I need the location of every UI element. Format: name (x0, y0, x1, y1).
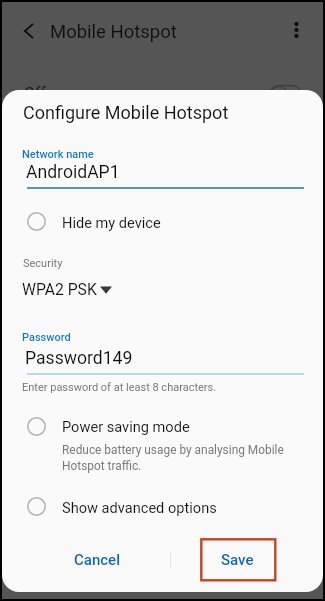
staticText: Off (24, 84, 47, 103)
staticText: Show advanced options (62, 499, 217, 516)
button[interactable]: Back (12, 12, 45, 49)
staticText: Enter password of at least 8 characters. (22, 381, 217, 394)
staticText: Security (23, 257, 63, 270)
button[interactable]: Power saving mode (2, 412, 323, 474)
staticText: Reduce battery usage by analysing Mobile… (62, 443, 286, 473)
button[interactable]: Cancel (57, 540, 137, 580)
staticText: WPA2 PSK (22, 280, 97, 298)
staticText: Configure Mobile Hotspot (23, 102, 229, 123)
button[interactable]: Hide my device (2, 205, 323, 237)
button[interactable]: WPA2 PSK (2, 275, 323, 297)
button[interactable]: Show advanced options (2, 490, 323, 522)
staticText: Network name (22, 148, 94, 161)
staticText: Hide my device (62, 214, 161, 231)
staticText: Power saving mode (62, 418, 190, 435)
staticText: Save (221, 551, 254, 569)
staticText: Password (22, 331, 71, 344)
button[interactable]: More options (282, 16, 310, 44)
staticText: Password149 (25, 348, 133, 369)
staticText: Cancel (74, 551, 121, 569)
staticText: AndroidAP1 (26, 162, 120, 183)
staticText: Mobile Hotspot (50, 21, 177, 43)
button[interactable]: Save (200, 540, 274, 580)
